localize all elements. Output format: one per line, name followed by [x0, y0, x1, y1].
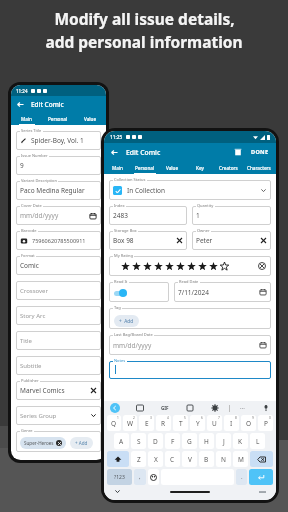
button[interactable]: T [173, 415, 188, 431]
button[interactable]: Series Group [16, 403, 101, 425]
button[interactable]: P [258, 415, 273, 431]
button[interactable]: Box 98 [109, 228, 187, 250]
button[interactable]: E [139, 415, 154, 431]
staticText: ?123 [114, 474, 125, 481]
button[interactable]: 2483 [109, 203, 187, 225]
button[interactable]: Back [16, 100, 25, 109]
button[interactable]: Creators [214, 161, 242, 174]
button[interactable]: Main [104, 161, 131, 174]
staticText: Crossover [20, 287, 48, 295]
button[interactable]: Notes [109, 358, 271, 379]
button[interactable]: Marvel Comics [16, 378, 101, 400]
button[interactable]: Value [158, 161, 186, 174]
button[interactable]: S [131, 433, 146, 449]
button[interactable]: G [182, 433, 197, 449]
button[interactable]: Settings [211, 404, 219, 412]
button[interactable]: D [148, 433, 163, 449]
staticText: My Rating [114, 253, 133, 258]
button[interactable]: , [134, 469, 146, 485]
staticText: Modify all issue details, [54, 8, 235, 29]
button[interactable]: K [233, 433, 248, 449]
button[interactable]: Backspace [250, 451, 273, 467]
button[interactable]: 1 [192, 203, 271, 225]
button[interactable]: I [224, 415, 239, 431]
button[interactable]: Enter [249, 469, 273, 485]
button[interactable]: Value [74, 113, 106, 125]
staticText: Key [196, 165, 204, 171]
button[interactable]: Comic [16, 253, 101, 275]
staticText: 9 [20, 161, 97, 170]
button[interactable]: Back [110, 403, 120, 413]
button[interactable]: Crossover [16, 278, 101, 300]
button[interactable]: Read It [109, 279, 169, 302]
button[interactable]: Personal [131, 161, 158, 174]
staticText: Cover Date [21, 203, 42, 208]
button[interactable]: 75960620785500911 [16, 228, 101, 250]
button[interactable]: mm/dd/yyyy [109, 332, 271, 355]
button[interactable]: W [123, 415, 137, 431]
button[interactable]: J [216, 433, 231, 449]
button[interactable]: Hide keyboard [114, 488, 121, 495]
button[interactable]: 9 [16, 153, 101, 175]
button[interactable]: DONE [250, 148, 270, 156]
button[interactable]: X [148, 451, 163, 467]
button[interactable]: Delete [233, 147, 243, 157]
staticText: 7/11/2024 [178, 288, 259, 297]
staticText: Tag [114, 305, 121, 310]
button[interactable]: L [250, 433, 265, 449]
button[interactable]: A [114, 433, 129, 449]
button[interactable]: + Add [70, 437, 93, 449]
staticText: M [238, 455, 244, 464]
button[interactable]: Back [110, 148, 119, 157]
button[interactable]: Y [190, 415, 205, 431]
button[interactable]: Characters [242, 161, 276, 174]
button[interactable]: In Collection [109, 177, 271, 200]
button[interactable]: GIF [161, 405, 169, 411]
button[interactable]: Stickers [136, 404, 144, 412]
button[interactable]: Q [107, 415, 121, 431]
button[interactable]: Title [16, 328, 101, 350]
button[interactable]: Emoji [148, 469, 159, 485]
button[interactable]: F [165, 433, 180, 449]
button[interactable]: Story Arc [16, 303, 101, 325]
button[interactable]: H [199, 433, 214, 449]
button[interactable]: + Add [114, 315, 139, 327]
button[interactable]: My Rating [109, 253, 271, 276]
button[interactable]: V [182, 451, 197, 467]
button[interactable]: Peter [192, 228, 271, 250]
staticText: Collection Status [114, 177, 146, 182]
button[interactable]: Paco Medina Regular [16, 178, 101, 200]
button[interactable]: M [233, 451, 248, 467]
button[interactable]: Shift [107, 451, 129, 467]
button[interactable]: Subtitle [16, 353, 101, 375]
button[interactable]: Z [131, 451, 146, 467]
staticText: In Collection [127, 186, 260, 195]
button[interactable]: U [207, 415, 222, 431]
button[interactable]: Main [11, 113, 42, 125]
button[interactable]: B [199, 451, 214, 467]
staticText: Storage Box [114, 228, 137, 233]
staticText: 75960620785500911 [32, 237, 97, 244]
button[interactable]: Key [186, 161, 214, 174]
button[interactable]: R [156, 415, 171, 431]
button[interactable]: Super-Heroes [20, 437, 66, 449]
staticText: 7 [218, 416, 220, 420]
button[interactable]: More [240, 404, 245, 412]
button[interactable]: C [165, 451, 180, 467]
button[interactable]: ?123 [107, 469, 132, 485]
button[interactable]: N [216, 451, 231, 467]
staticText: Owner [197, 228, 210, 233]
staticText: Y [196, 419, 200, 428]
button[interactable]: . [236, 469, 247, 485]
button[interactable]: Spider-Boy, Vol. 1 [16, 128, 101, 150]
button[interactable]: Voice input [262, 404, 270, 412]
button[interactable]: 7/11/2024 [174, 279, 271, 302]
button[interactable]: mm/dd/yyyy [16, 203, 101, 225]
staticText: Format [21, 253, 35, 258]
button[interactable]: Personal [42, 113, 74, 125]
staticText: Q [111, 419, 117, 428]
button[interactable]: O [241, 415, 256, 431]
button[interactable]: Clipboard [186, 404, 194, 412]
staticText: DONE [251, 148, 269, 156]
